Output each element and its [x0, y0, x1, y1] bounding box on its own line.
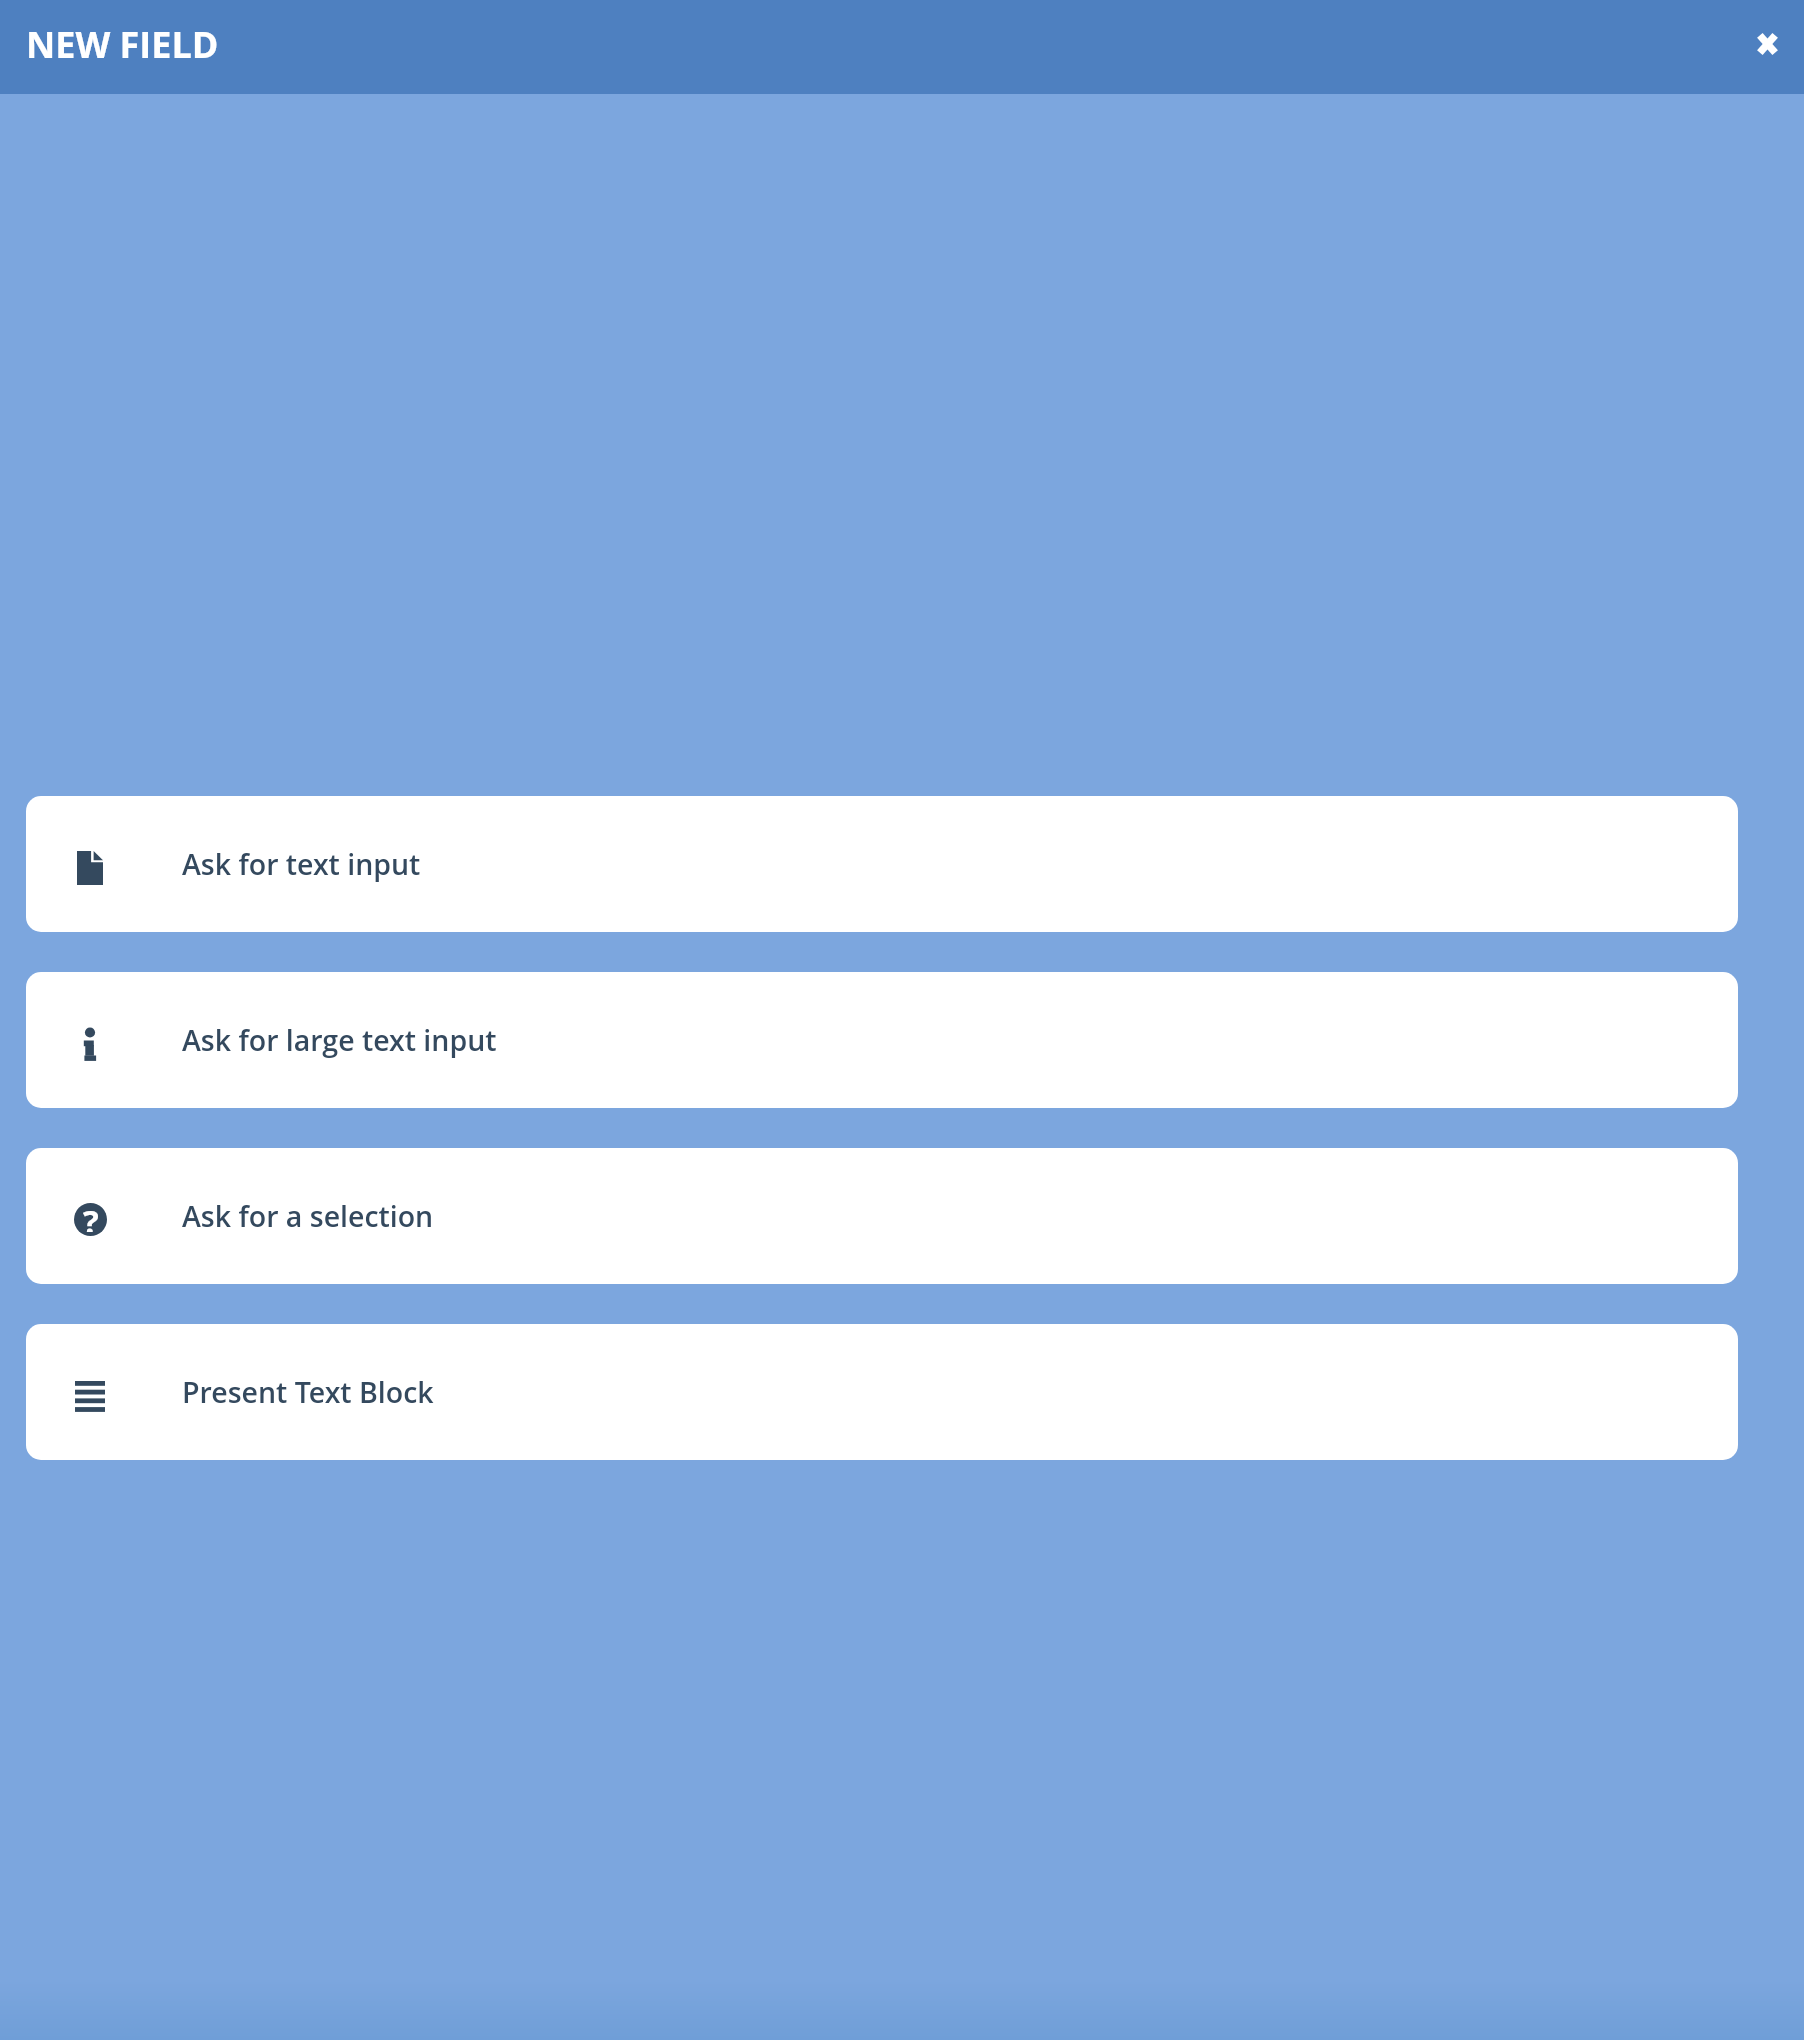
button[interactable]: Close: [1710, 0, 1804, 91]
button[interactable]: ?: [26, 1148, 1738, 1284]
staticText: Ask for a selection: [182, 1197, 434, 1236]
button[interactable]: Ask for text input: [26, 796, 1738, 932]
staticText: Ask for text input: [182, 845, 421, 884]
button[interactable]: Ask for large text input: [26, 972, 1738, 1108]
staticText: NEW FIELD: [26, 20, 219, 69]
button[interactable]: Present Text Block: [26, 1324, 1738, 1460]
staticText: ?: [83, 1203, 99, 1232]
staticText: Present Text Block: [182, 1373, 434, 1412]
staticText: Ask for large text input: [182, 1021, 497, 1060]
